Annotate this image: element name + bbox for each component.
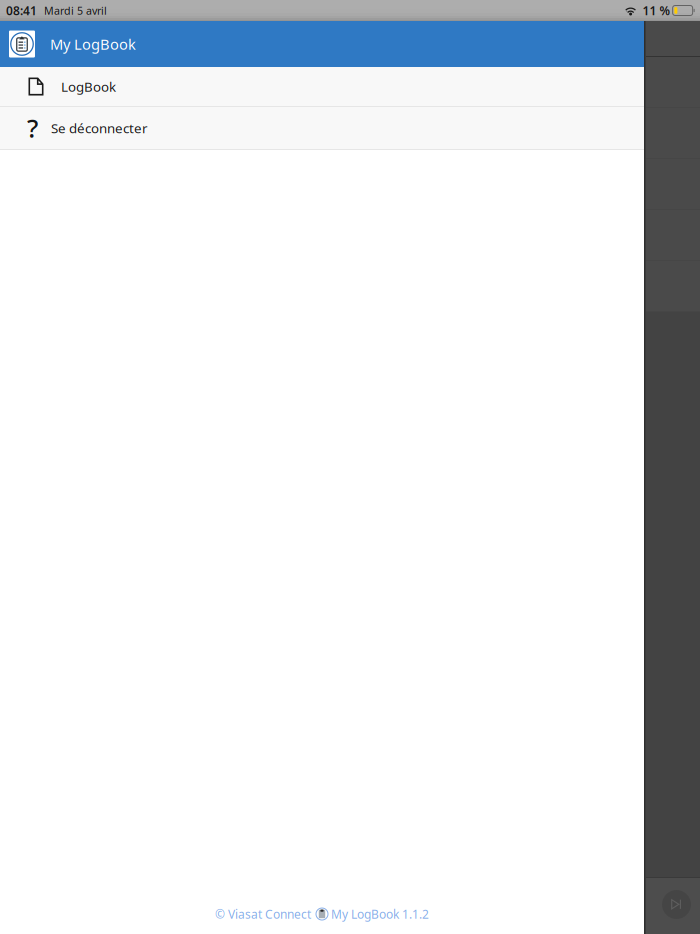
button[interactable]: ? [0,107,644,150]
staticText: LogBook [61,78,116,95]
staticText: My LogBook [50,34,136,54]
staticText: Mardi 5 avril [44,3,107,18]
button[interactable]: LogBook [0,67,644,107]
button[interactable]: My LogBook [0,21,644,67]
button[interactable]: © Viasat Connect [215,906,429,922]
staticText: ? [27,111,38,145]
staticText: My LogBook 1.1.2 [331,906,429,922]
staticText: 08:41 [6,2,37,18]
staticText: Se déconnecter [51,119,148,137]
staticText: © Viasat Connect [215,906,311,922]
staticText: 11 % [642,2,670,18]
